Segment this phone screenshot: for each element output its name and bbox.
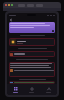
button[interactable] (9, 51, 55, 57)
button[interactable] (9, 62, 55, 77)
button[interactable]: Profile (40, 84, 57, 95)
button[interactable] (9, 81, 55, 84)
button[interactable] (9, 22, 55, 33)
button[interactable]: Back (9, 18, 13, 22)
button[interactable] (9, 38, 55, 46)
button[interactable]: Grid (7, 84, 23, 95)
button[interactable]: Add (23, 84, 40, 95)
